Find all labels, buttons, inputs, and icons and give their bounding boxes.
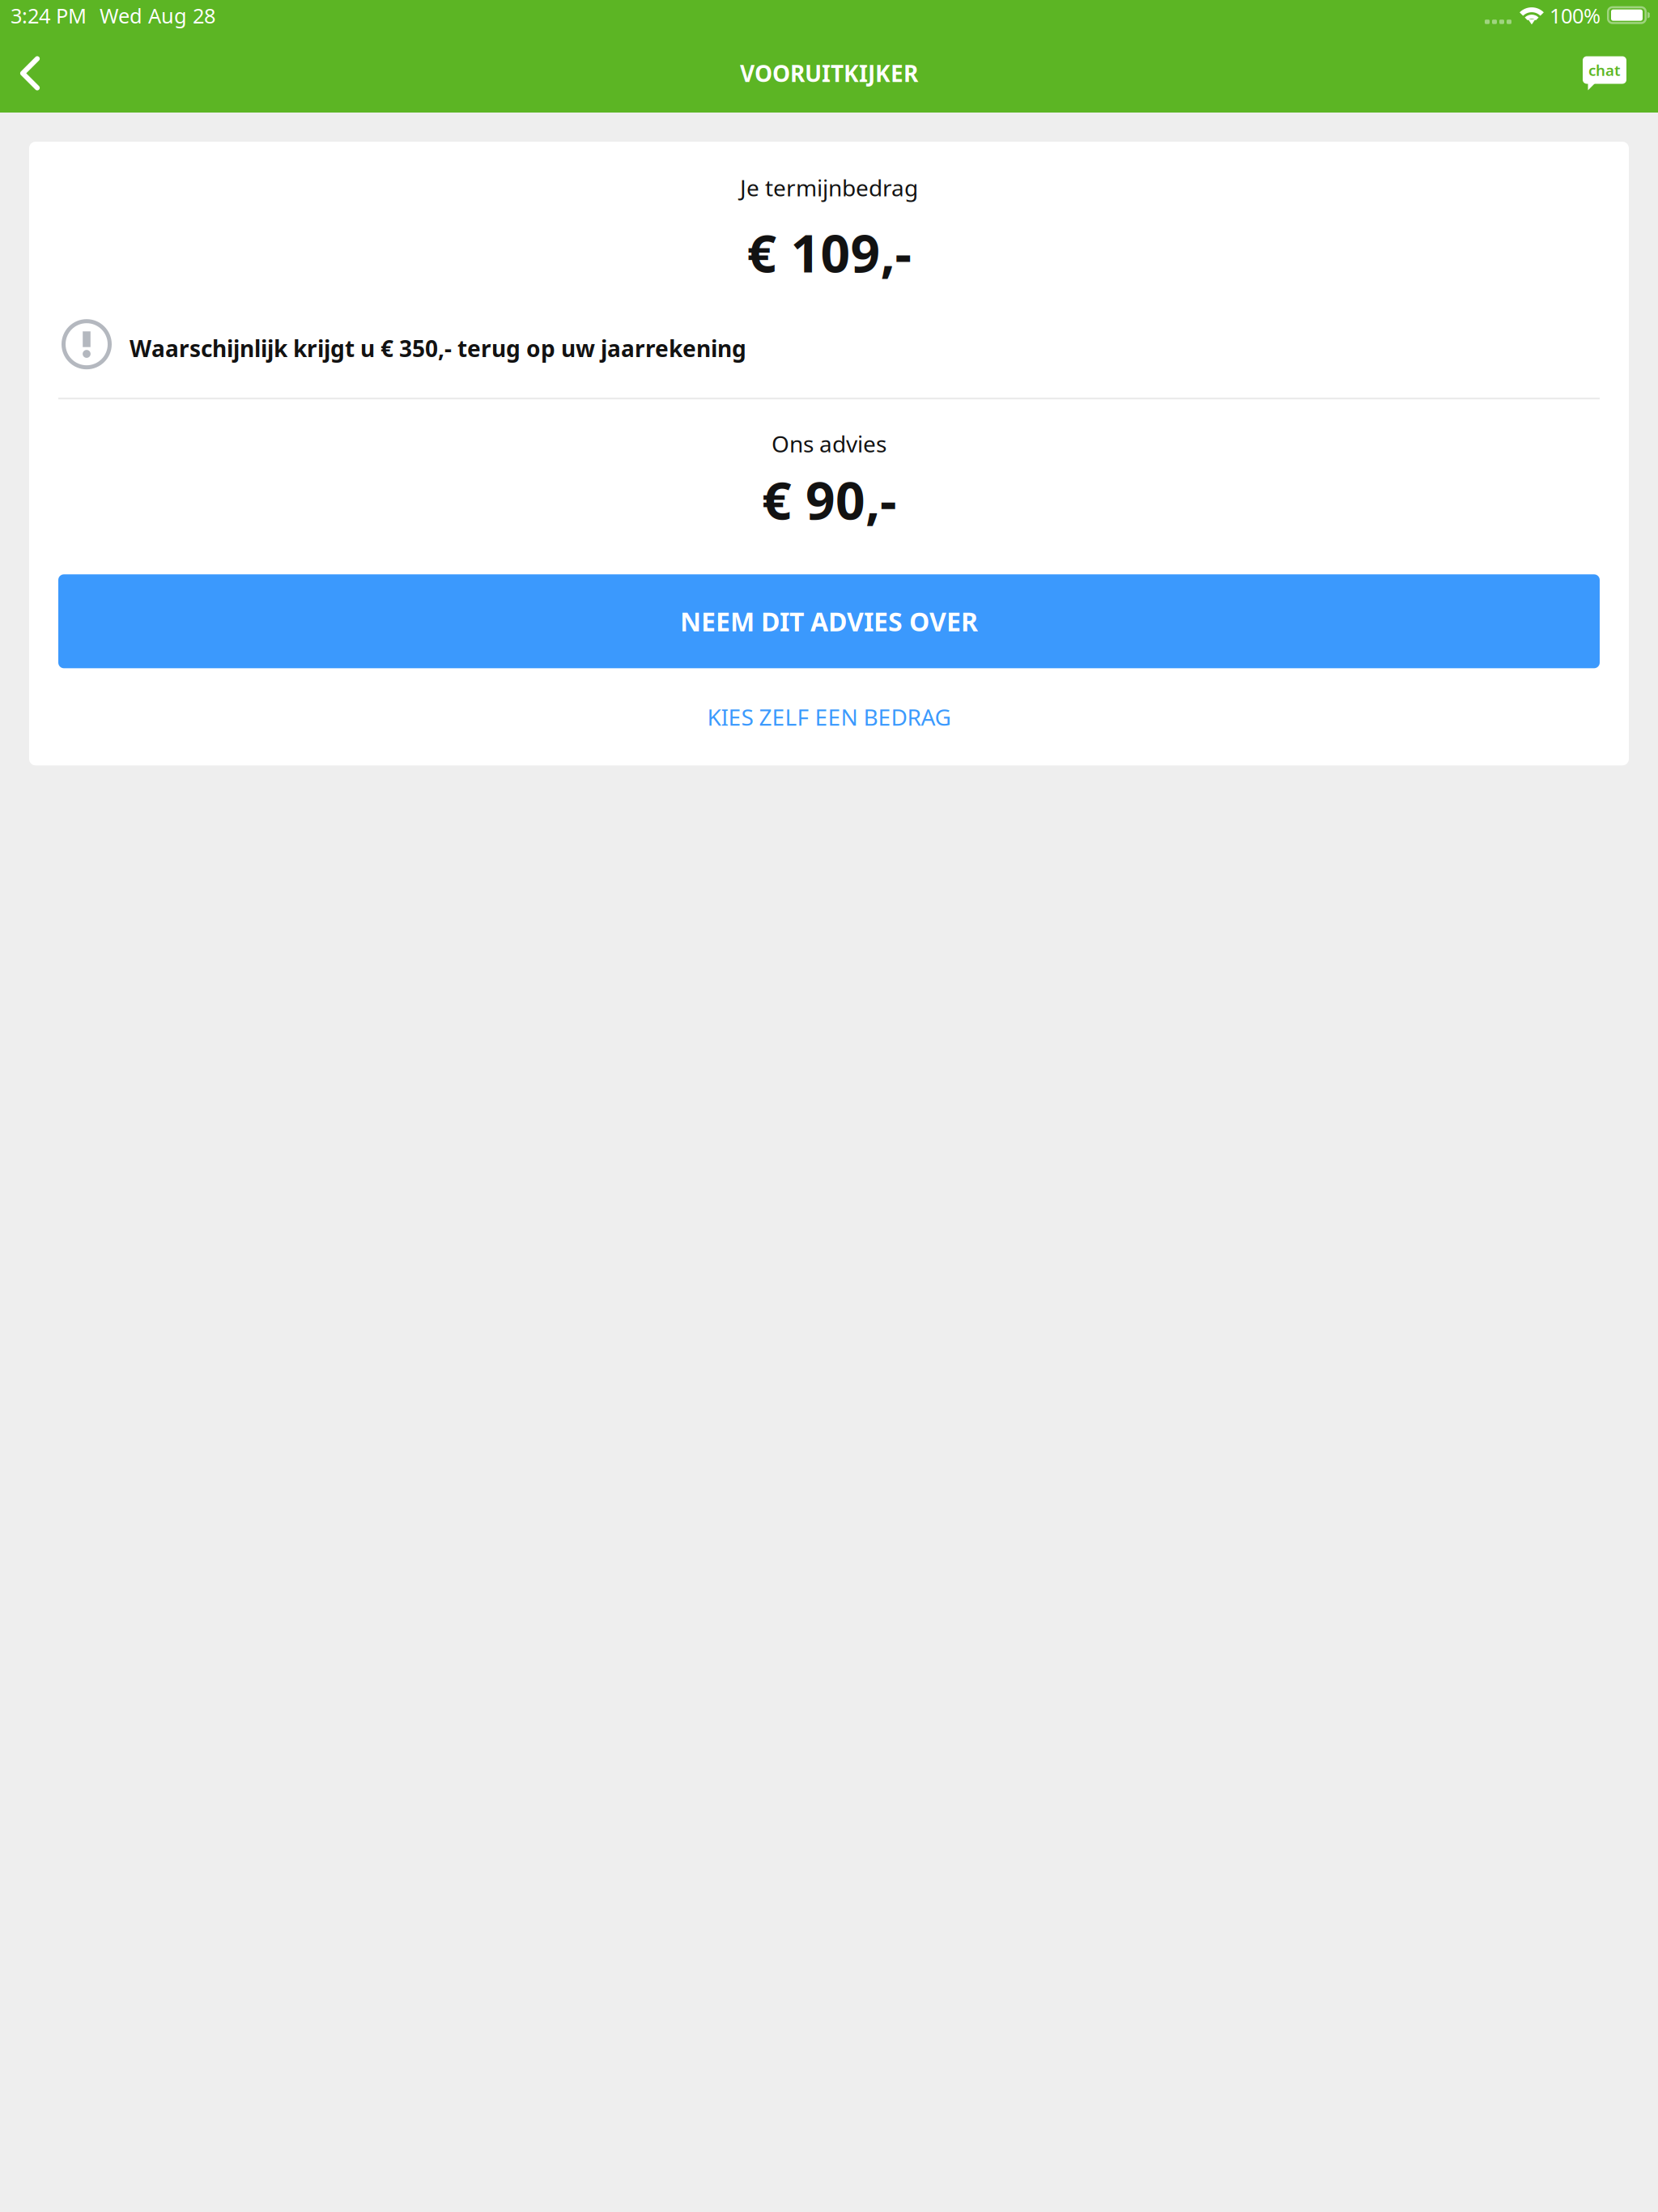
- button[interactable]: Back: [0, 36, 65, 110]
- staticText: Wed Aug 28: [100, 2, 215, 29]
- staticText: Waarschijnlijk krijgt u € 350,- terug op…: [130, 333, 746, 363]
- staticText: VOORUITKIJKER: [740, 58, 918, 88]
- button[interactable]: Chat: [1558, 36, 1658, 110]
- staticText: NEEM DIT ADVIES OVER: [680, 604, 978, 639]
- staticText: € 109,-: [747, 218, 911, 287]
- staticText: 3:24 PM: [11, 2, 87, 29]
- staticText: chat: [1588, 60, 1621, 80]
- staticText: € 90,-: [762, 465, 896, 534]
- staticText: KIES ZELF EEN BEDRAG: [707, 702, 951, 732]
- staticText: Ons advies: [772, 428, 886, 459]
- button[interactable]: NEEM DIT ADVIES OVER: [58, 574, 1600, 668]
- button[interactable]: KIES ZELF EEN BEDRAG: [58, 668, 1600, 765]
- staticText: 100%: [1550, 2, 1601, 29]
- staticText: Je termijnbedrag: [740, 172, 918, 203]
